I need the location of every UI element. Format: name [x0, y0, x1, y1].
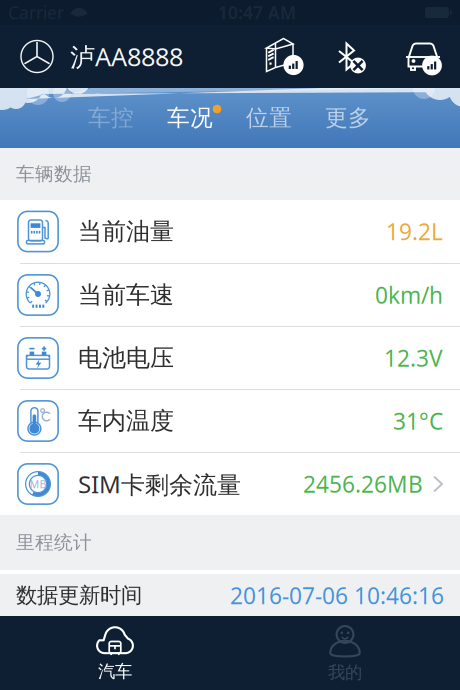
button[interactable]: 我的: [230, 616, 460, 690]
staticText: 2016-07-06 10:46:16: [230, 580, 444, 610]
button[interactable]: 车控: [82, 88, 140, 148]
staticText: MB: [29, 477, 46, 491]
staticText: 电池电压: [78, 343, 174, 373]
button[interactable]: 车内温度: [0, 389, 460, 452]
staticText: 当前车速: [78, 280, 174, 310]
button[interactable]: 当前油量: [0, 200, 460, 263]
button[interactable]: Vehicle signal: [402, 37, 444, 75]
button[interactable]: 更多: [319, 88, 377, 148]
staticText: Carrier: [8, 1, 64, 24]
button[interactable]: 电池电压: [0, 326, 460, 389]
button[interactable]: Bluetooth disconnected: [334, 39, 364, 73]
staticText: 我的: [328, 662, 362, 683]
staticText: 数据更新时间: [16, 582, 142, 609]
staticText: 泸AA8888: [70, 40, 183, 73]
staticText: 31°C: [393, 406, 443, 436]
staticText: 车内温度: [78, 406, 174, 436]
button[interactable]: Server status: [264, 36, 303, 76]
staticText: 车况: [167, 104, 213, 132]
button[interactable]: 汽车: [0, 616, 230, 690]
button[interactable]: 位置: [240, 88, 298, 148]
staticText: 2456.26MB: [303, 469, 423, 499]
button[interactable]: 当前车速: [0, 263, 460, 326]
button[interactable]: Mercedes-Benz: [20, 39, 54, 73]
staticText: 车控: [88, 104, 134, 132]
button[interactable]: 车况: [161, 88, 219, 148]
button[interactable]: MB: [0, 452, 460, 515]
staticText: 更多: [325, 104, 371, 132]
staticText: 0km/h: [375, 280, 443, 310]
staticText: 19.2L: [386, 216, 443, 246]
staticText: 12.3V: [384, 343, 443, 373]
staticText: SIM卡剩余流量: [78, 468, 241, 500]
staticText: 当前油量: [78, 217, 174, 246]
staticText: 汽车: [98, 661, 132, 682]
staticText: 10:47 AM: [218, 1, 296, 24]
staticText: 车辆数据: [16, 162, 92, 185]
staticText: 里程统计: [16, 531, 92, 554]
staticText: 位置: [246, 104, 292, 132]
button[interactable]: 数据更新时间: [0, 574, 460, 617]
